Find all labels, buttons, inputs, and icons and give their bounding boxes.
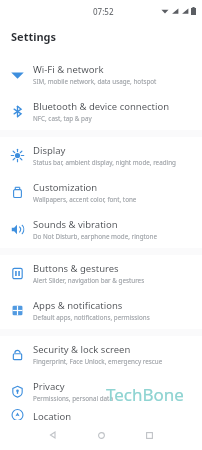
button[interactable]: Back — [36, 420, 70, 450]
staticText: Do Not Disturb, earphone mode, ringtone — [33, 232, 158, 241]
button[interactable]: Recent apps — [132, 420, 166, 450]
button[interactable]: Security & lock screen — [0, 336, 202, 373]
button[interactable]: Buttons & gestures — [0, 255, 202, 292]
staticText: Status bar, ambient display, night mode,… — [33, 158, 192, 167]
staticText: Settings — [11, 29, 57, 44]
button[interactable]: Customization — [0, 174, 202, 211]
button[interactable]: Wi-Fi & network — [0, 56, 202, 93]
button[interactable]: Sounds & vibration — [0, 211, 202, 248]
button[interactable]: Location — [0, 410, 202, 420]
button[interactable]: Display — [0, 137, 202, 174]
staticText: Alert Slider, navigation bar & gestures — [33, 276, 145, 285]
staticText: Wi-Fi & network — [33, 63, 104, 76]
staticText: Buttons & gestures — [33, 262, 119, 275]
staticText: Privacy — [33, 380, 65, 393]
button[interactable]: Home — [84, 420, 118, 450]
staticText: Wallpapers, accent color, font, tone — [33, 195, 137, 204]
staticText: SIM, mobile network, data usage, hotspot — [33, 77, 157, 86]
staticText: Security & lock screen — [33, 343, 131, 356]
button[interactable]: Apps & notifications — [0, 292, 202, 329]
staticText: 07:52 — [93, 6, 114, 17]
button[interactable]: Bluetooth & device connection — [0, 93, 202, 130]
staticText: Sounds & vibration — [33, 218, 118, 231]
staticText: Customization — [33, 181, 98, 194]
staticText: Location — [33, 410, 72, 420]
staticText: TechBone — [106, 383, 184, 406]
staticText: Default apps, notifications, permissions — [33, 313, 150, 322]
button[interactable]: Privacy — [0, 373, 202, 410]
staticText: Display — [33, 144, 66, 157]
staticText: Bluetooth & device connection — [33, 100, 170, 113]
staticText: Fingerprint, Face Unlock, emergency resc… — [33, 357, 163, 366]
staticText: NFC, cast, tap & pay — [33, 114, 92, 123]
staticText: Permissions, personal data — [33, 394, 113, 403]
staticText: Apps & notifications — [33, 299, 123, 312]
